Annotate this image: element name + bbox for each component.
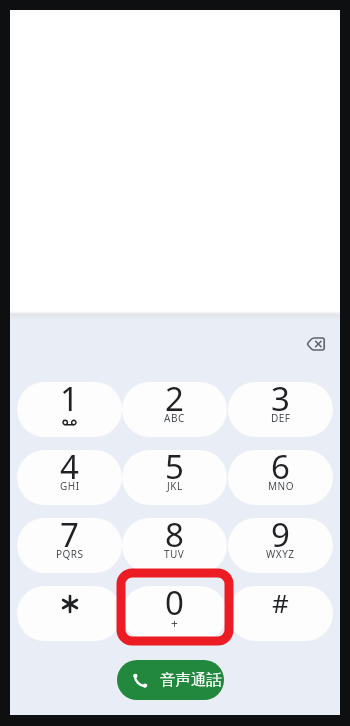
- button[interactable]: 8: [122, 518, 227, 573]
- staticText: GHI: [60, 479, 80, 493]
- staticText: 0: [165, 586, 184, 625]
- button[interactable]: 4: [17, 450, 122, 505]
- staticText: 音声通話: [160, 670, 222, 690]
- button[interactable]: [17, 586, 122, 641]
- staticText: PQRS: [56, 547, 84, 561]
- button[interactable]: 7: [17, 518, 122, 573]
- button[interactable]: 2: [122, 382, 227, 437]
- button[interactable]: [298, 330, 334, 358]
- button[interactable]: 5: [122, 450, 227, 505]
- staticText: 4: [60, 450, 79, 489]
- staticText: ABC: [164, 411, 185, 425]
- staticText: +: [171, 615, 178, 631]
- button[interactable]: 6: [228, 450, 333, 505]
- staticText: TUV: [164, 547, 185, 561]
- staticText: JKL: [167, 479, 183, 493]
- staticText: 3: [271, 382, 290, 421]
- staticText: DEF: [271, 411, 291, 425]
- staticText: 8: [165, 518, 184, 557]
- button[interactable]: 3: [228, 382, 333, 437]
- staticText: #: [272, 586, 289, 620]
- staticText: 9: [271, 518, 290, 557]
- staticText: 6: [271, 450, 290, 489]
- button[interactable]: 9: [228, 518, 333, 573]
- staticText: WXYZ: [266, 547, 295, 561]
- staticText: 2: [165, 382, 184, 421]
- button[interactable]: 音声通話: [117, 660, 224, 700]
- staticText: 7: [60, 518, 79, 557]
- button[interactable]: #: [228, 586, 333, 641]
- button[interactable]: 1: [17, 382, 122, 437]
- button[interactable]: 0: [122, 586, 227, 641]
- staticText: 5: [165, 450, 184, 489]
- staticText: 1: [60, 382, 79, 421]
- staticText: MNO: [268, 479, 294, 493]
